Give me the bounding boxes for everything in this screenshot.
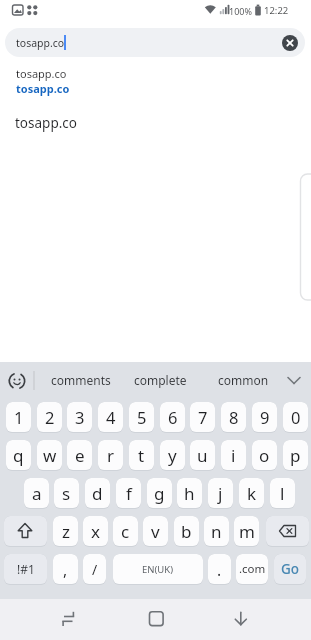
staticText: comments (51, 372, 111, 388)
button[interactable]: !#1 (4, 554, 47, 585)
staticText: , (63, 559, 68, 580)
button[interactable]: d (85, 478, 110, 509)
staticText: 100% (229, 5, 252, 17)
button[interactable]: u (190, 440, 215, 471)
button[interactable]: tosapp.co (5, 28, 305, 57)
button[interactable]: g (147, 478, 172, 509)
button[interactable]: 4 (98, 402, 123, 433)
button[interactable]: common (208, 370, 278, 390)
button[interactable] (282, 35, 298, 51)
staticText: g (154, 482, 165, 505)
staticText: complete (134, 372, 187, 388)
button[interactable]: 0 (283, 402, 308, 433)
staticText: z (62, 520, 70, 543)
staticText: 4 (106, 406, 116, 428)
button[interactable]: Go (274, 554, 306, 585)
staticText: 7 (198, 406, 208, 428)
staticText: e (75, 444, 85, 467)
button[interactable]: 9 (252, 402, 277, 433)
button[interactable]: q (6, 440, 31, 471)
staticText: 8 (229, 406, 239, 428)
staticText: / (92, 560, 98, 579)
button[interactable] (216, 599, 268, 640)
button[interactable]: f (116, 478, 141, 509)
staticText: d (92, 482, 103, 505)
staticText: p (290, 444, 301, 467)
staticText: 2 (45, 406, 55, 428)
staticText: b (181, 520, 192, 543)
staticText: a (32, 482, 42, 505)
button[interactable]: w (37, 440, 62, 471)
button[interactable]: h (177, 478, 202, 509)
staticText: r (107, 444, 115, 467)
staticText: y (168, 444, 177, 467)
staticText: tosapp.co (16, 66, 67, 81)
button[interactable]: n (204, 516, 229, 547)
staticText: common (218, 372, 269, 388)
staticText: .com (239, 561, 266, 577)
staticText: v (151, 520, 160, 543)
button[interactable]: e (67, 440, 92, 471)
button[interactable]: m (234, 516, 259, 547)
button[interactable]: tosapp.co (0, 81, 220, 96)
button[interactable]: l (270, 478, 295, 509)
button[interactable] (43, 599, 95, 640)
button[interactable]: complete (125, 370, 195, 390)
staticText: tosapp.co (16, 81, 70, 96)
staticText: 5 (137, 406, 147, 428)
button[interactable]: , (53, 554, 78, 585)
staticText: n (211, 520, 222, 543)
button[interactable]: a (24, 478, 49, 509)
button[interactable]: x (83, 516, 108, 547)
staticText: q (13, 444, 24, 467)
button[interactable]: tosapp.co (0, 66, 220, 81)
staticText: c (121, 520, 130, 543)
button[interactable] (4, 516, 47, 547)
button[interactable]: 8 (221, 402, 246, 433)
staticText: j (218, 482, 223, 505)
button[interactable]: i (221, 440, 246, 471)
staticText: . (217, 559, 222, 580)
staticText: u (197, 444, 208, 467)
button[interactable]: j (208, 478, 233, 509)
staticText: i (231, 444, 236, 467)
button[interactable]: / (83, 554, 106, 585)
button[interactable]: z (53, 516, 78, 547)
button[interactable]: 3 (67, 402, 92, 433)
staticText: tosapp.co (15, 114, 77, 132)
button[interactable]: 6 (160, 402, 185, 433)
staticText: Go (281, 560, 300, 578)
button[interactable]: s (54, 478, 79, 509)
button[interactable]: k (239, 478, 264, 509)
staticText: x (91, 520, 100, 543)
staticText: o (259, 444, 270, 467)
button[interactable]: c (113, 516, 138, 547)
button[interactable]: .com (236, 554, 268, 585)
button[interactable]: o (252, 440, 277, 471)
staticText: 1 (14, 406, 24, 428)
button[interactable]: y (160, 440, 185, 471)
staticText: s (62, 482, 71, 505)
button[interactable]: v (143, 516, 168, 547)
button[interactable]: 7 (190, 402, 215, 433)
button[interactable]: r (98, 440, 123, 471)
button[interactable]: 5 (129, 402, 154, 433)
staticText: 0 (291, 406, 301, 428)
button[interactable]: EN(UK) (113, 554, 203, 585)
staticText: 3 (75, 406, 85, 428)
button[interactable] (266, 516, 309, 547)
button[interactable]: comments (46, 370, 116, 390)
staticText: m (239, 520, 255, 543)
staticText: tosapp.co (16, 36, 65, 50)
button[interactable]: b (174, 516, 199, 547)
staticText: l (280, 482, 285, 505)
button[interactable]: 2 (37, 402, 62, 433)
button[interactable]: tosapp.co (0, 114, 220, 134)
button[interactable]: . (208, 554, 231, 585)
staticText: f (126, 482, 132, 505)
button[interactable]: t (129, 440, 154, 471)
button[interactable]: p (283, 440, 308, 471)
button[interactable] (130, 599, 182, 640)
staticText: EN(UK) (142, 563, 174, 576)
button[interactable]: 1 (6, 402, 31, 433)
